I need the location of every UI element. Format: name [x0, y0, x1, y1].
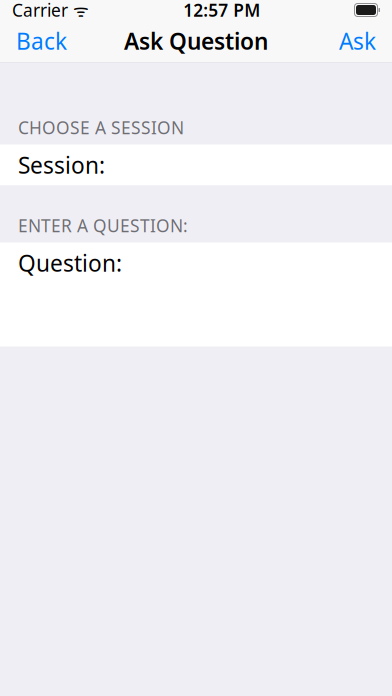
button[interactable]: Question:: [0, 242, 392, 346]
button[interactable]: Ask: [323, 20, 392, 62]
staticText: ENTER A QUESTION:: [18, 214, 188, 237]
staticText: CHOOSE A SESSION: [18, 116, 184, 139]
staticText: Ask: [339, 26, 376, 56]
staticText: Session:: [18, 150, 105, 180]
staticText: Question:: [18, 248, 122, 278]
staticText: 12:57 PM: [183, 0, 260, 21]
staticText: Carrier: [12, 0, 68, 21]
button[interactable]: Back: [0, 20, 83, 62]
button[interactable]: Session:: [0, 144, 392, 185]
staticText: ᯤ: [68, 0, 89, 21]
staticText: Back: [16, 26, 67, 56]
staticText: Ask Question: [124, 26, 268, 56]
